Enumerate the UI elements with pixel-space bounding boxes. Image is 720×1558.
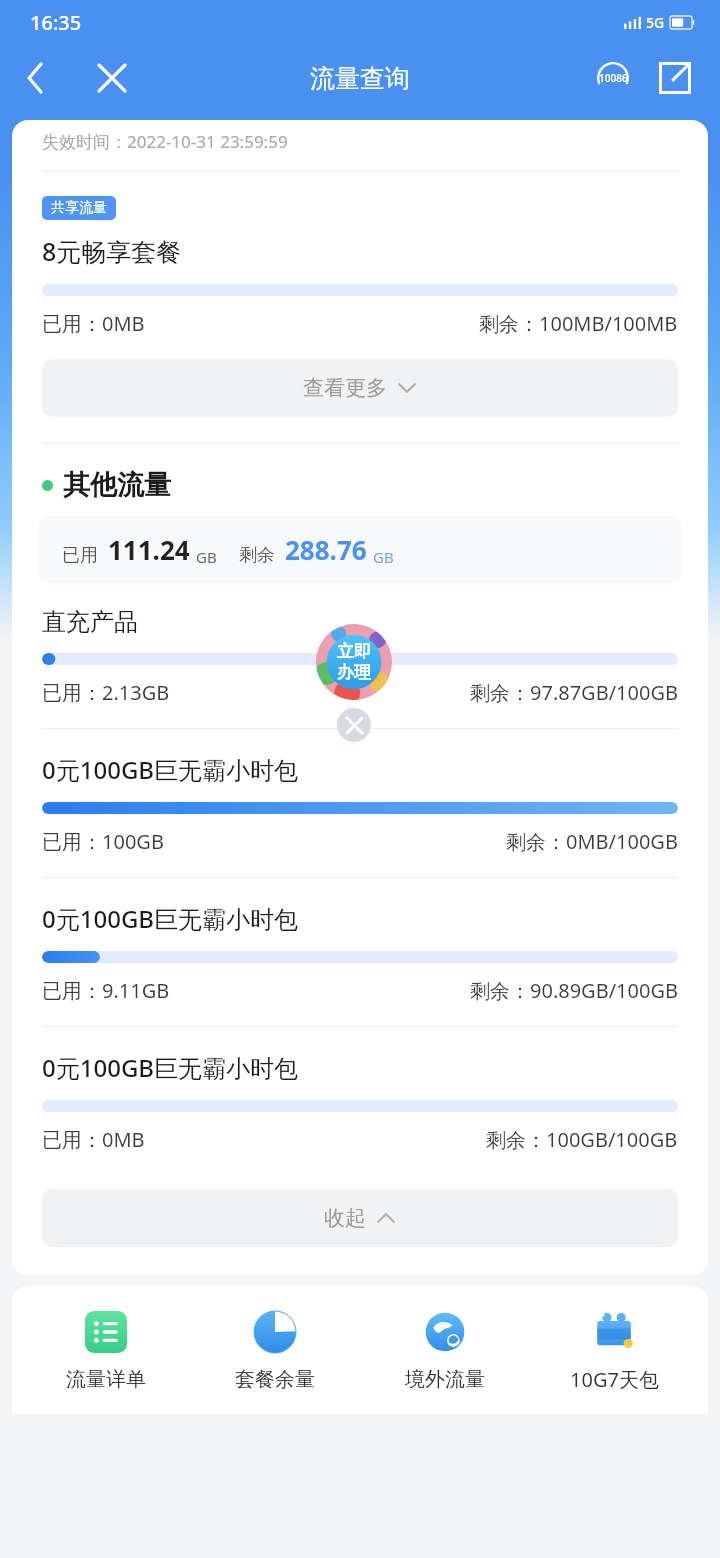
staticText: 已用：2.13GB [42, 679, 170, 706]
staticText: 10086 [599, 71, 628, 85]
staticText: 剩余：90.89GB/100GB [470, 977, 678, 1004]
button[interactable]: 10G7天包 [539, 1302, 689, 1399]
staticText: GB [196, 547, 217, 567]
button[interactable]: 查看更多 [42, 359, 678, 417]
staticText: 已用：100GB [42, 828, 164, 855]
staticText: 288.76 [285, 532, 367, 567]
staticText: 立即 [337, 641, 371, 662]
button[interactable]: 境外流量 [370, 1303, 520, 1398]
button[interactable]: 套餐余量 [200, 1303, 350, 1398]
button[interactable]: Close [90, 56, 134, 100]
staticText: 查看更多 [303, 375, 387, 401]
button[interactable]: 10086 客服 [590, 55, 636, 101]
button[interactable]: 流量详单 [31, 1303, 181, 1398]
staticText: 8元畅享套餐 [42, 234, 182, 268]
button[interactable]: 立即 [316, 624, 392, 700]
staticText: 16:35 [30, 9, 82, 36]
staticText: 111.24 [108, 532, 190, 567]
staticText: 已用：0MB [42, 1126, 145, 1153]
staticText: 10G7天包 [570, 1366, 659, 1393]
staticText: 已用：0MB [42, 310, 145, 337]
staticText: 其他流量 [63, 468, 171, 502]
staticText: 流量详单 [66, 1367, 146, 1392]
staticText: 直充产品 [42, 607, 138, 637]
staticText: 境外流量 [405, 1367, 485, 1392]
staticText: 办理 [337, 662, 371, 683]
staticText: 剩余：100MB/100MB [479, 310, 678, 337]
button[interactable]: Back [14, 56, 58, 100]
staticText: 已用 [62, 544, 98, 567]
staticText: 剩余：97.87GB/100GB [470, 679, 678, 706]
staticText: 0元100GB巨无霸小时包 [42, 753, 299, 786]
button[interactable]: 收起 [42, 1189, 678, 1247]
button[interactable]: Close promotion [337, 708, 371, 742]
staticText: 共享流量 [51, 199, 107, 217]
staticText: 流量查询 [310, 63, 410, 94]
button[interactable]: Share [652, 55, 698, 101]
staticText: 收起 [324, 1205, 366, 1231]
staticText: 剩余：100GB/100GB [486, 1126, 678, 1153]
staticText: 剩余 [239, 544, 275, 567]
staticText: 套餐余量 [235, 1367, 315, 1392]
staticText: 0元100GB巨无霸小时包 [42, 902, 299, 935]
staticText: 失效时间：2022-10-31 23:59:59 [42, 130, 288, 153]
staticText: 0元100GB巨无霸小时包 [42, 1051, 299, 1084]
staticText: 5G [646, 13, 665, 32]
staticText: 剩余：0MB/100GB [506, 828, 678, 855]
staticText: GB [373, 547, 394, 567]
staticText: 已用：9.11GB [42, 977, 170, 1004]
